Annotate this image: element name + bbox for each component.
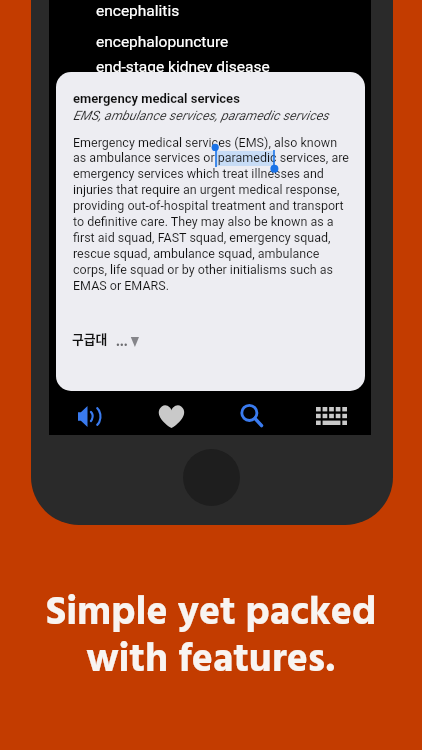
staticText: Emergency medical services (EMS), also k… xyxy=(73,135,351,293)
staticText: end-stage kidney disease xyxy=(96,58,270,76)
button[interactable]: encephalitis xyxy=(49,0,371,26)
staticText: 구급대 xyxy=(72,329,108,348)
staticText: EMS, ambulance services, paramedic servi… xyxy=(73,108,329,123)
staticText: encephalitis xyxy=(96,2,180,20)
button[interactable]: Keyboard xyxy=(309,393,353,437)
button[interactable]: end-stage kidney disease xyxy=(49,52,371,82)
button[interactable]: Speak xyxy=(68,393,112,437)
staticText: emergency medical services xyxy=(73,91,240,106)
button[interactable]: emergency medical services xyxy=(56,72,365,391)
button[interactable]: Favorites xyxy=(149,393,193,437)
button[interactable]: Home xyxy=(183,449,240,506)
button[interactable]: Search xyxy=(230,393,274,437)
staticText: Simple yet packed with features. xyxy=(0,582,422,693)
button[interactable]: encephalopuncture xyxy=(49,27,371,57)
staticText: encephalopuncture xyxy=(96,33,229,51)
